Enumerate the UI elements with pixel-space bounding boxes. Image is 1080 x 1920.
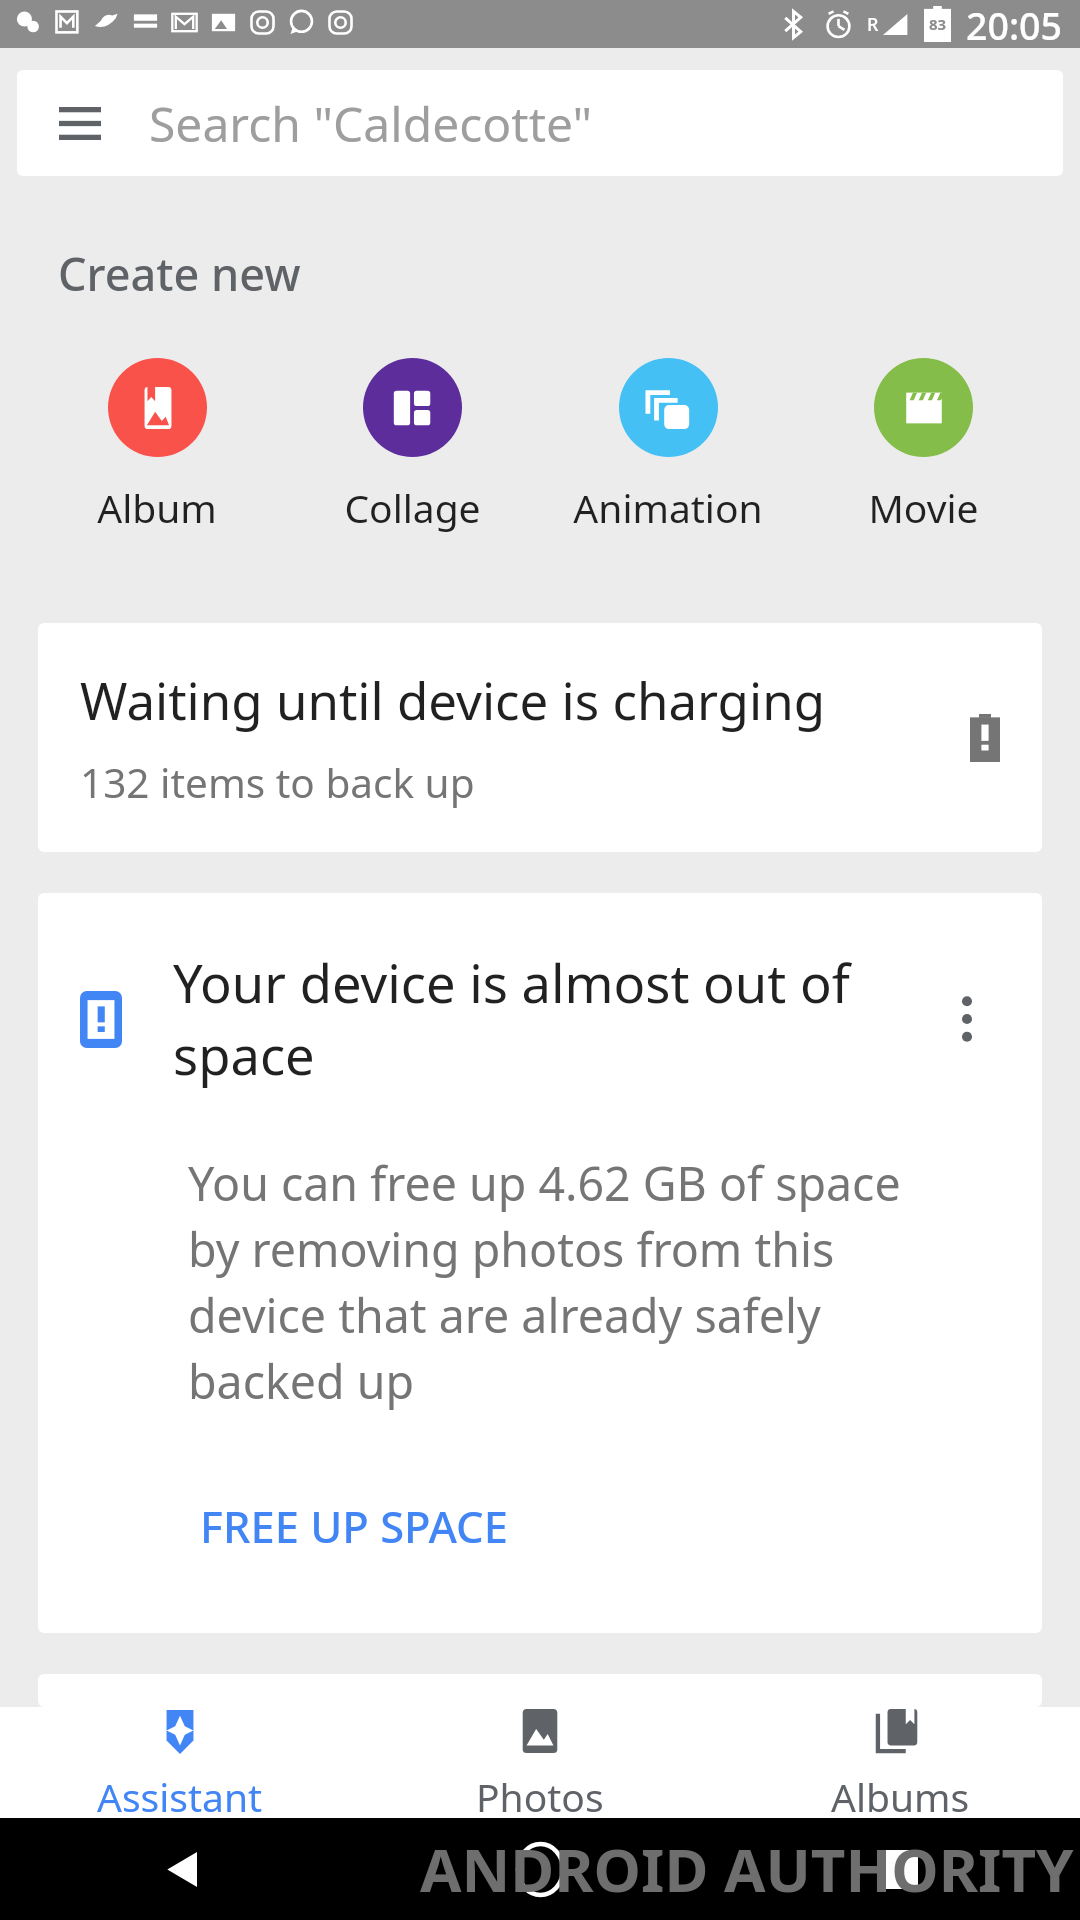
button[interactable]: Menu — [17, 70, 1063, 176]
staticText: You can free up 4.62 GB of space by remo… — [188, 1151, 958, 1412]
button[interactable]: Recents — [720, 1818, 1080, 1920]
staticText: Collage — [344, 481, 481, 534]
staticText: Waiting until device is charging — [80, 665, 826, 734]
staticText: 83 — [929, 14, 947, 34]
button[interactable]: Back — [0, 1818, 360, 1920]
staticText: Photos — [476, 1770, 604, 1818]
button[interactable]: FREE UP SPACE — [158, 1478, 550, 1573]
staticText: 132 items to back up — [80, 755, 475, 810]
staticText: Movie — [868, 481, 979, 534]
button[interactable]: Menu — [47, 90, 113, 156]
staticText: FREE UP SPACE — [200, 1496, 508, 1555]
button[interactable]: Albums — [720, 1707, 1080, 1818]
staticText: Albums — [831, 1770, 970, 1818]
staticText: Album — [97, 481, 217, 534]
button[interactable]: Waiting until device is charging — [38, 623, 1042, 852]
button[interactable]: Collage — [313, 358, 511, 534]
staticText: ANDROID AUTHORITY — [420, 1828, 1074, 1910]
button[interactable]: Home — [360, 1818, 720, 1920]
button[interactable]: Photos — [360, 1707, 720, 1818]
staticText: Search "Caldecotte" — [149, 91, 593, 156]
button[interactable]: Animation — [569, 358, 767, 534]
staticText: Your device is almost out of space — [173, 947, 934, 1091]
button[interactable]: Assistant — [0, 1707, 360, 1818]
button[interactable]: More options — [934, 986, 1000, 1052]
staticText: R — [867, 12, 879, 37]
button[interactable]: Album — [58, 358, 256, 534]
staticText: Assistant — [97, 1770, 263, 1818]
staticText: Animation — [573, 481, 763, 534]
staticText: 20:05 — [966, 0, 1062, 48]
staticText: Create new — [58, 243, 301, 304]
button[interactable]: Movie — [824, 358, 1022, 534]
